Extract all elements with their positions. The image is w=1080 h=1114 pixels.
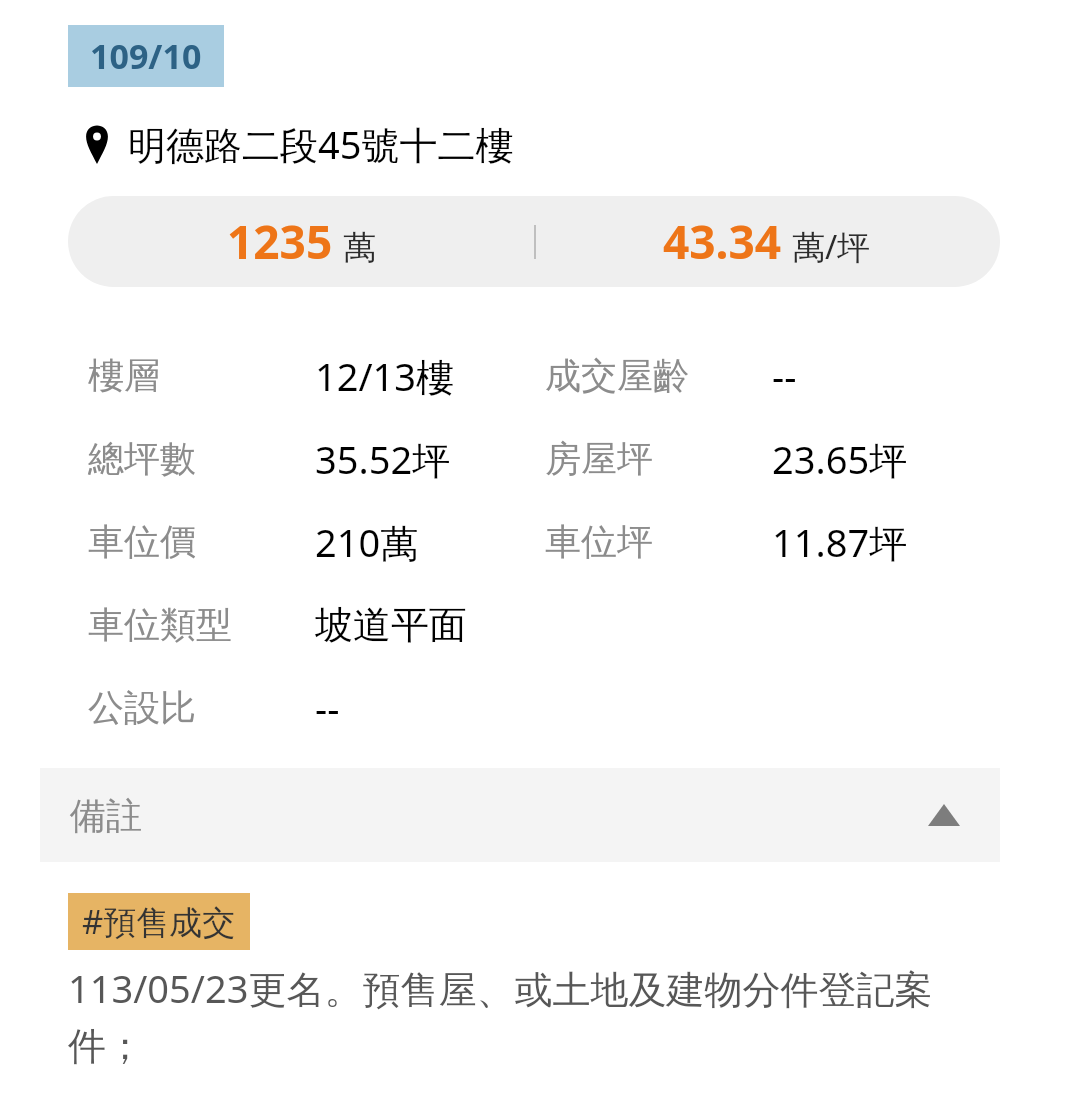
- staticText: 車位坪: [545, 519, 653, 564]
- staticText: 1235: [227, 210, 333, 273]
- staticText: 109/10: [90, 33, 202, 79]
- button[interactable]: 車位價: [0, 500, 1080, 583]
- staticText: 210萬: [315, 516, 419, 568]
- button[interactable]: 車位類型: [0, 583, 1080, 666]
- button[interactable]: 總坪數: [0, 417, 1080, 500]
- other: Location: [84, 124, 110, 164]
- button[interactable]: 109/10: [68, 25, 224, 87]
- staticText: 成交屋齡: [545, 353, 689, 398]
- staticText: 明德路二段45號十二樓: [128, 118, 514, 170]
- staticText: 萬/坪: [792, 224, 871, 269]
- button[interactable]: 1235: [68, 196, 1000, 287]
- other: Collapse remarks: [928, 804, 960, 826]
- staticText: 11.87坪: [772, 516, 908, 568]
- staticText: 萬: [343, 227, 376, 269]
- button[interactable]: 樓層: [0, 334, 1080, 417]
- staticText: 43.34: [663, 210, 782, 273]
- staticText: 車位類型: [88, 602, 232, 647]
- staticText: 樓層: [88, 353, 160, 398]
- staticText: --: [315, 682, 340, 734]
- staticText: 總坪數: [88, 436, 196, 481]
- staticText: 23.65坪: [772, 433, 908, 485]
- button[interactable]: 備註: [40, 768, 1000, 862]
- staticText: 公設比: [88, 685, 196, 730]
- button[interactable]: #預售成交: [68, 893, 250, 950]
- staticText: 12/13樓: [315, 350, 455, 402]
- staticText: 35.52坪: [315, 433, 451, 485]
- button[interactable]: 公設比: [0, 666, 1080, 749]
- staticText: 備註: [70, 793, 142, 838]
- staticText: #預售成交: [82, 899, 236, 944]
- staticText: --: [772, 350, 797, 402]
- button[interactable]: Location: [84, 118, 514, 170]
- staticText: 房屋坪: [545, 436, 653, 481]
- staticText: 113/05/23更名。預售屋、或土地及建物分件登記案件；: [68, 962, 938, 1070]
- staticText: 坡道平面: [315, 601, 467, 649]
- staticText: 車位價: [88, 519, 196, 564]
